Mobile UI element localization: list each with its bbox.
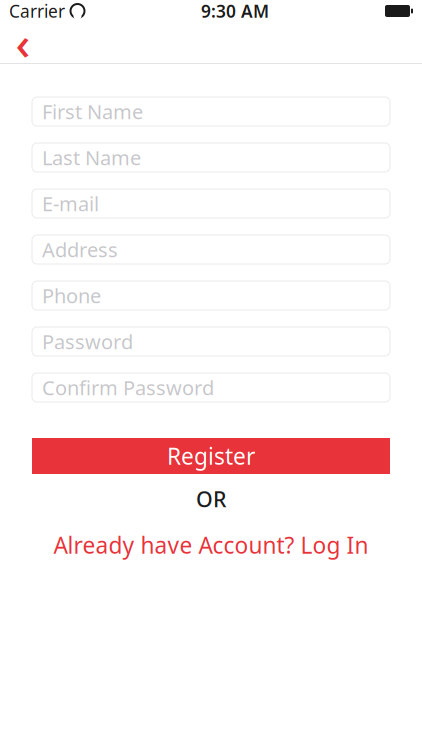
staticText: Carrier — [9, 0, 65, 22]
staticText: Phone — [42, 282, 101, 309]
staticText: Last Name — [42, 144, 141, 171]
staticText: Confirm Password — [42, 374, 214, 401]
staticText: OR — [196, 485, 226, 513]
staticText: ‹ — [15, 12, 30, 73]
button[interactable]: Back — [0, 22, 46, 63]
staticText: Register — [167, 441, 255, 471]
button[interactable]: Register — [32, 438, 390, 474]
button[interactable]: Already have Account? Log In — [32, 532, 390, 558]
staticText: 9:30 AM — [201, 0, 269, 22]
staticText: Address — [42, 236, 118, 263]
staticText: Password — [42, 328, 133, 355]
staticText: Already have Account? Log In — [53, 530, 368, 560]
staticText: First Name — [42, 98, 143, 125]
staticText: E-mail — [42, 190, 99, 217]
